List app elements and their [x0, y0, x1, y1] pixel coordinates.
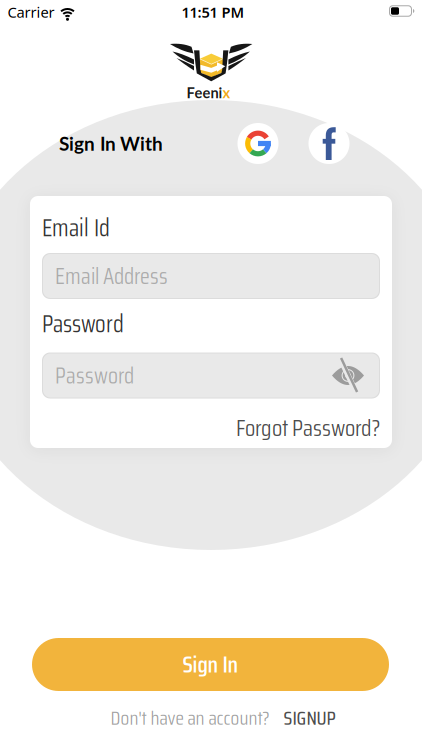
staticText: SIGNUP: [283, 702, 335, 734]
button[interactable]: Sign in with Google: [237, 123, 278, 164]
staticText: x: [222, 84, 230, 101]
staticText: Email Id: [42, 209, 110, 247]
button[interactable]: Show password: [331, 363, 365, 388]
button[interactable]: Forgot Password?: [236, 410, 380, 446]
staticText: Sign In With: [59, 132, 163, 155]
staticText: Don't have an account?: [110, 702, 269, 734]
button[interactable]: Sign in with Facebook: [308, 123, 349, 164]
staticText: Password: [55, 358, 134, 393]
button[interactable]: Email Address: [42, 253, 380, 299]
staticText: Email Address: [55, 258, 168, 294]
staticText: Carrier: [7, 2, 54, 22]
staticText: Feeni: [186, 84, 222, 101]
button[interactable]: Sign In: [32, 638, 389, 691]
button[interactable]: Password: [42, 352, 380, 398]
staticText: Sign In: [182, 646, 238, 683]
staticText: 11:51 PM: [181, 2, 244, 22]
staticText: Forgot Password?: [236, 410, 380, 446]
staticText: Password: [42, 305, 124, 343]
button[interactable]: SIGNUP: [283, 702, 335, 734]
